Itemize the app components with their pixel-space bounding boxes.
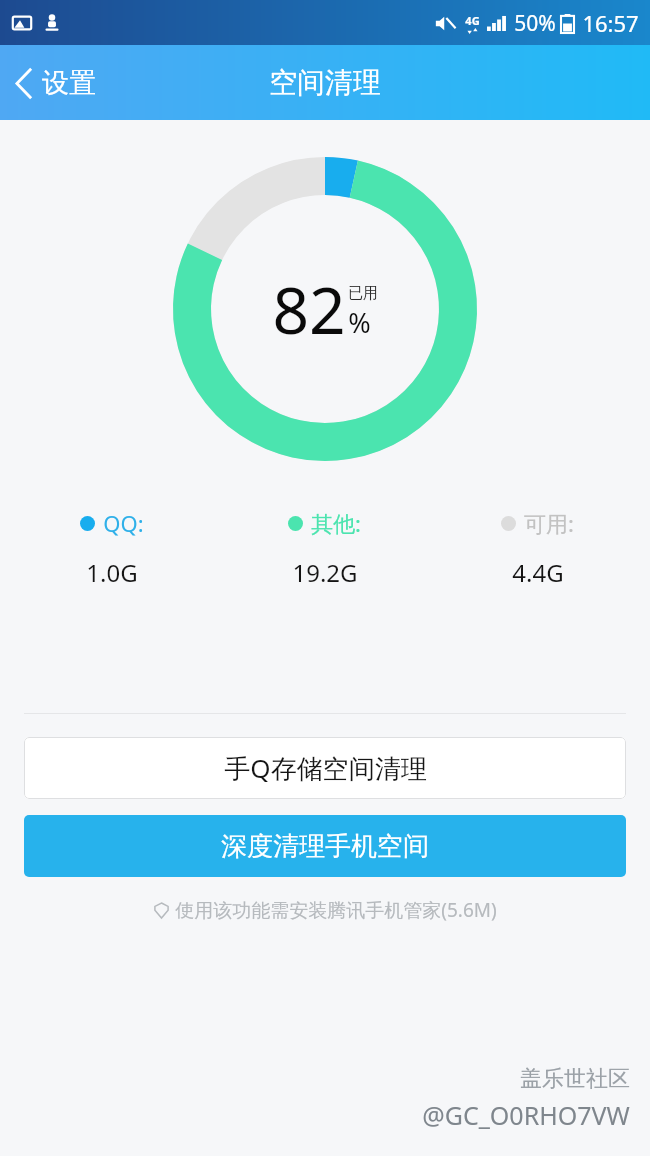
staticText: @GC_O0RHO7VW [422, 1098, 630, 1132]
staticText: % [348, 304, 371, 341]
staticText: 82 [272, 266, 346, 353]
staticText: 已用 [348, 284, 378, 303]
staticText: 4.4G [512, 556, 564, 589]
staticText: 手Q存储空间清理 [224, 750, 427, 786]
staticText: 16:57 [582, 8, 639, 38]
staticText: 1.0G [86, 556, 138, 589]
staticText: QQ: [103, 508, 144, 538]
staticText: 使用该功能需安装腾讯手机管家(5.6M) [175, 897, 497, 923]
staticText: 其他: [311, 508, 361, 538]
button[interactable]: 手Q存储空间清理 [24, 737, 626, 799]
staticText: 可用: [524, 508, 574, 538]
staticText: 深度清理手机空间 [221, 830, 429, 863]
staticText: 50% [514, 9, 556, 38]
staticText: 盖乐世社区 [520, 1065, 630, 1093]
staticText: 空间清理 [269, 65, 381, 100]
staticText: 4G [465, 13, 480, 28]
button[interactable]: Back [0, 54, 114, 112]
staticText: 设置 [42, 66, 96, 100]
button[interactable]: 深度清理手机空间 [24, 815, 626, 877]
staticText: 19.2G [292, 556, 358, 589]
